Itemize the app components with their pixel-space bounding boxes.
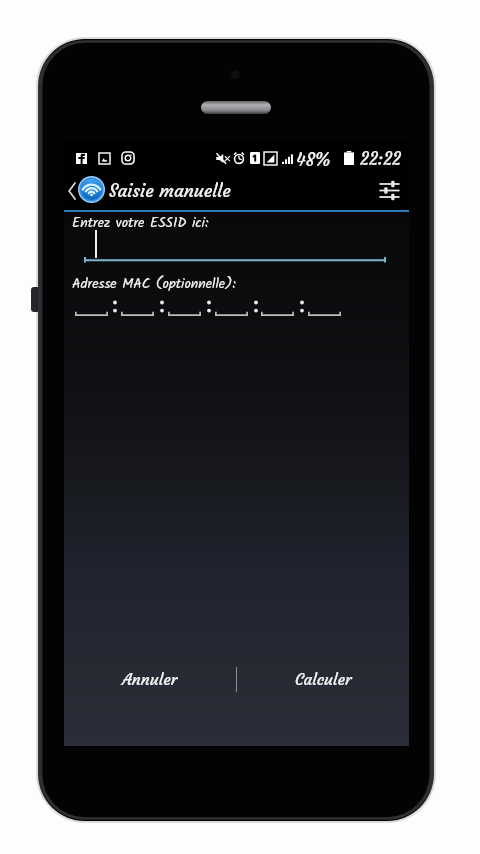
button[interactable]: [215, 300, 248, 320]
staticText: 22:22: [360, 148, 401, 169]
staticText: Annuler: [122, 669, 178, 689]
button[interactable]: Settings: [371, 174, 407, 207]
button[interactable]: [308, 300, 341, 320]
staticText: Saisie manuelle: [109, 179, 231, 202]
staticText: Entrez votre ESSID ici:: [72, 212, 209, 234]
button[interactable]: [121, 300, 154, 320]
button[interactable]: [261, 300, 294, 320]
button[interactable]: Back: [64, 171, 108, 210]
button[interactable]: Calculer: [237, 657, 409, 701]
button[interactable]: [82, 226, 388, 264]
staticText: Adresse MAC (optionnelle):: [72, 273, 236, 295]
button[interactable]: Annuler: [64, 657, 236, 701]
button[interactable]: [75, 300, 108, 320]
staticText: Calculer: [295, 669, 352, 689]
staticText: 48%: [296, 148, 331, 171]
button[interactable]: [168, 300, 201, 320]
